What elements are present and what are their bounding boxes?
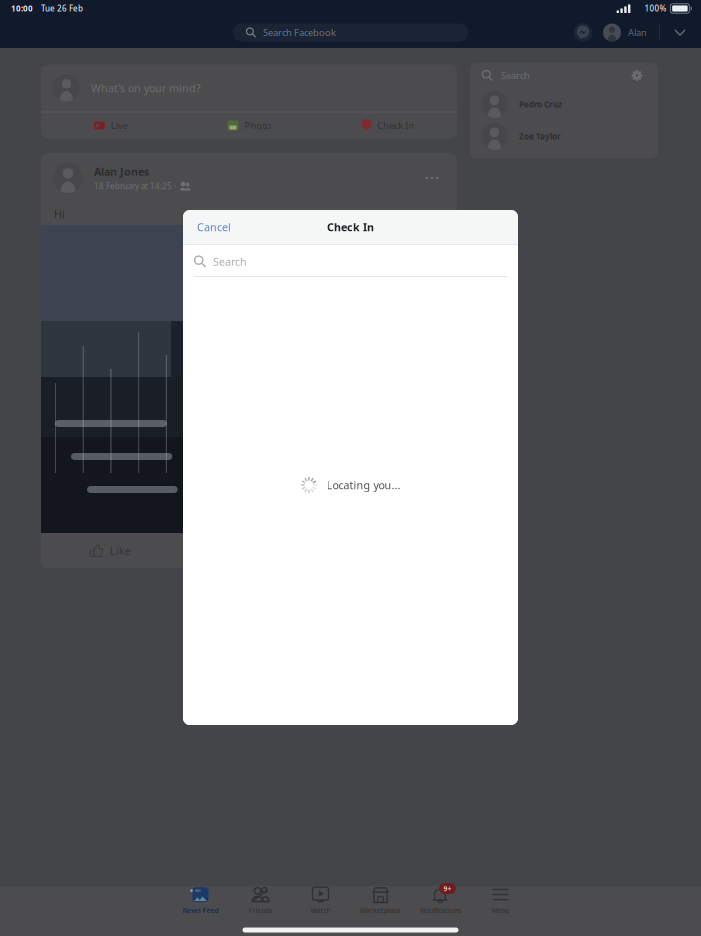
staticText: Search Facebook	[263, 26, 336, 39]
staticText: Notifications	[420, 906, 461, 915]
staticText: Friends	[248, 906, 272, 915]
staticText: Photo	[244, 119, 271, 132]
staticText: What's on your mind?	[91, 81, 201, 95]
button[interactable]: Live	[41, 112, 180, 138]
staticText: Alan Jones	[94, 165, 149, 179]
staticText: 100%	[644, 3, 666, 14]
button[interactable]: Cancel	[183, 210, 245, 244]
staticText: News Feed	[182, 906, 218, 915]
staticText: 10:00	[11, 3, 33, 14]
button[interactable]: Contacts settings	[628, 66, 646, 84]
staticText: Marketplace	[360, 906, 401, 915]
button[interactable]: Photo	[180, 112, 318, 138]
button[interactable]: Account menu	[668, 21, 692, 43]
staticText: Locating you...	[326, 478, 400, 492]
staticText: Tue 26 Feb	[41, 3, 83, 14]
button[interactable]: Zoe Taylor	[470, 120, 658, 152]
button[interactable]: Menu	[470, 882, 530, 918]
staticText: 9+	[443, 884, 451, 893]
staticText: Check In	[377, 119, 414, 132]
button[interactable]: Watch	[290, 882, 350, 918]
staticText: Menu	[491, 906, 509, 915]
button[interactable]: Comment	[180, 533, 318, 568]
button[interactable]: Messenger	[572, 21, 594, 43]
button[interactable]: More options	[419, 167, 445, 189]
staticText: Cancel	[197, 220, 231, 234]
staticText: Watch	[310, 906, 330, 915]
button[interactable]: Alan	[603, 21, 647, 43]
staticText: 18 February at 14:25 ·	[94, 181, 176, 191]
button[interactable]: Friends	[230, 882, 290, 918]
button[interactable]: Pedro Cruz	[470, 88, 658, 120]
staticText: Check In	[327, 220, 374, 234]
button[interactable]: News Feed	[170, 882, 230, 918]
staticText: Pedro Cruz	[519, 99, 562, 110]
staticText: Search	[501, 69, 530, 82]
staticText: Live	[111, 119, 128, 132]
button[interactable]: Marketplace	[350, 882, 410, 918]
button[interactable]: Check In	[318, 112, 457, 138]
button[interactable]: Search Facebook	[233, 23, 468, 41]
staticText: Hi	[54, 207, 65, 221]
staticText: Search	[213, 254, 247, 269]
staticText: Like	[110, 543, 131, 558]
staticText: Alan	[628, 26, 647, 39]
staticText: Zoe Taylor	[519, 131, 561, 142]
button[interactable]: 9+	[410, 882, 470, 918]
